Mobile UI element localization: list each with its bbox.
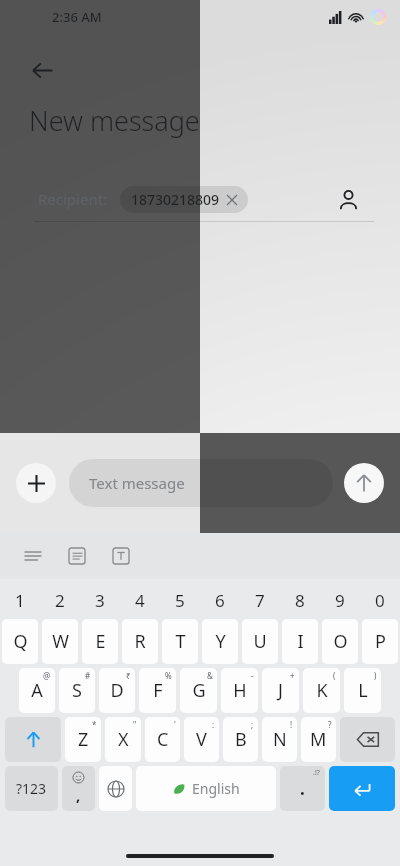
button[interactable]: 1 (0, 583, 40, 617)
button[interactable]: Text style (106, 541, 136, 571)
staticText: ( (333, 670, 336, 681)
button[interactable]: U (242, 619, 278, 664)
staticText: ' (174, 719, 176, 730)
staticText: 5 (175, 589, 185, 612)
staticText: 4 (135, 589, 145, 612)
staticText: English (192, 779, 240, 798)
staticText: Y (215, 629, 226, 654)
button[interactable]: - (221, 668, 258, 713)
button[interactable]: 8 (280, 583, 320, 617)
button[interactable]: R (122, 619, 158, 664)
staticText: O (333, 629, 348, 654)
staticText: 9 (335, 589, 345, 612)
staticText: Q (13, 629, 28, 654)
staticText: I (297, 629, 304, 654)
staticText: E (95, 629, 106, 654)
button[interactable]: 18730218809 (120, 186, 248, 213)
button[interactable]: Emoji and comma (62, 766, 95, 811)
button[interactable]: 5 (160, 583, 200, 617)
staticText: B (235, 727, 247, 752)
button[interactable]: Clipboard (62, 541, 92, 571)
button[interactable]: 0 (360, 583, 400, 617)
staticText: V (196, 727, 207, 752)
staticText: * (92, 719, 97, 730)
staticText: - (251, 670, 254, 681)
button[interactable]: ?123 (5, 766, 58, 811)
button[interactable]: @ (19, 668, 55, 713)
button[interactable]: Enter (329, 766, 395, 811)
button[interactable]: 7 (240, 583, 280, 617)
button[interactable]: ? (301, 717, 336, 762)
button[interactable]: * (65, 717, 101, 762)
button[interactable]: Q (2, 619, 38, 664)
staticText: : (212, 719, 215, 730)
button[interactable]: English (136, 766, 276, 811)
staticText: 6 (215, 589, 225, 612)
button[interactable]: ! (262, 717, 297, 762)
staticText: . (300, 777, 305, 800)
button[interactable]: : (184, 717, 219, 762)
staticText: 0 (375, 589, 385, 612)
button[interactable]: 3 (80, 583, 120, 617)
button[interactable]: + (262, 668, 299, 713)
staticText: K (316, 678, 328, 703)
button[interactable]: Contacts (330, 181, 366, 217)
button[interactable]: % (139, 668, 176, 713)
button[interactable]: P (362, 619, 398, 664)
staticText: # (85, 670, 91, 681)
button[interactable]: & (180, 668, 217, 713)
staticText: % (165, 670, 172, 681)
staticText: L (358, 678, 368, 703)
staticText: 2:36 AM (52, 8, 102, 26)
button[interactable]: Shift (5, 717, 61, 762)
button[interactable]: Back (22, 50, 62, 90)
button[interactable]: 6 (200, 583, 240, 617)
staticText: N (273, 727, 287, 752)
button[interactable]: ₹ (99, 668, 135, 713)
staticText: ? (328, 719, 332, 730)
button[interactable]: Text message (69, 459, 333, 507)
staticText: .!? (313, 768, 320, 778)
button[interactable]: 2 (40, 583, 80, 617)
staticText: + (290, 670, 295, 681)
button[interactable]: ) (344, 668, 381, 713)
button[interactable]: ( (303, 668, 340, 713)
button[interactable]: Send (344, 463, 384, 503)
button[interactable]: Y (202, 619, 238, 664)
staticText: M (310, 727, 327, 752)
staticText: ; (251, 719, 254, 730)
button[interactable]: ; (223, 717, 258, 762)
button[interactable]: W (42, 619, 78, 664)
staticText: C (157, 727, 169, 752)
button[interactable]: Backspace (340, 717, 395, 762)
button[interactable]: Change language (99, 766, 132, 811)
staticText: U (253, 629, 267, 654)
button[interactable]: Menu (18, 541, 48, 571)
staticText: A (31, 678, 43, 703)
staticText: W (52, 629, 69, 654)
staticText: F (153, 678, 163, 703)
staticText: 3 (95, 589, 105, 612)
button[interactable]: # (59, 668, 95, 713)
button[interactable]: T (162, 619, 198, 664)
staticText: 7 (255, 589, 265, 612)
button[interactable]: ' (145, 717, 180, 762)
staticText: Z (78, 727, 89, 752)
button[interactable]: I (282, 619, 318, 664)
button[interactable]: E (82, 619, 118, 664)
staticText: Text message (89, 473, 185, 493)
staticText: 8 (295, 589, 305, 612)
button[interactable]: .!? (280, 766, 325, 811)
staticText: @ (43, 670, 51, 681)
staticText: , (76, 785, 81, 805)
button[interactable]: Add attachment (16, 463, 56, 503)
staticText: X (118, 727, 129, 752)
button[interactable]: 9 (320, 583, 360, 617)
staticText: New message (29, 102, 200, 139)
button[interactable]: O (322, 619, 358, 664)
button[interactable]: 4 (120, 583, 160, 617)
staticText: ₹ (126, 670, 131, 681)
staticText: J (278, 678, 283, 703)
button[interactable]: " (105, 717, 141, 762)
staticText: H (233, 678, 247, 703)
